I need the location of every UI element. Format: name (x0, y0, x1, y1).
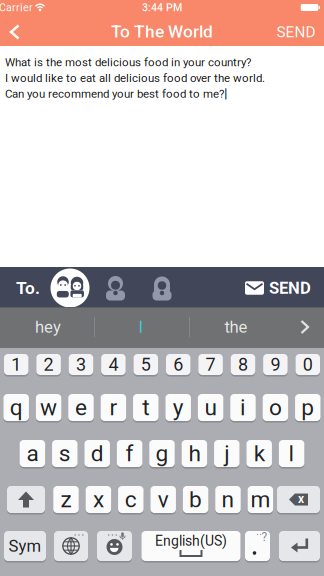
staticText: I would like to eat all delicious food o… (5, 71, 265, 85)
button[interactable]: x (86, 485, 111, 514)
staticText: v (158, 486, 169, 513)
button[interactable]: I (101, 312, 181, 342)
button[interactable]: English(US) (141, 530, 240, 562)
button[interactable] (288, 307, 322, 347)
staticText: SEND (276, 23, 315, 41)
button[interactable]: 0 (295, 353, 320, 376)
button[interactable]: the (196, 312, 276, 342)
staticText: a (26, 440, 38, 467)
staticText: 3 (76, 354, 86, 375)
button[interactable] (50, 268, 90, 308)
staticText: 2 (44, 354, 54, 375)
staticText: Carrier (0, 1, 33, 14)
button[interactable]: Sym (4, 530, 46, 562)
button[interactable]: a (20, 439, 45, 468)
button[interactable]: 7 (198, 353, 223, 376)
staticText: n (221, 486, 234, 513)
button[interactable]: 6 (166, 353, 190, 376)
button[interactable]: z (53, 485, 79, 514)
button[interactable]: k (246, 439, 272, 468)
staticText: f (126, 440, 134, 467)
staticText: z (60, 486, 71, 513)
button[interactable]: q (3, 393, 29, 422)
button[interactable]: hey (8, 312, 88, 342)
button[interactable] (7, 485, 45, 514)
button[interactable]: f (117, 439, 142, 468)
staticText: h (188, 440, 200, 467)
button[interactable]: u (198, 393, 223, 422)
staticText: y (173, 394, 184, 421)
staticText: l (289, 440, 295, 467)
button[interactable]: 3 (69, 353, 93, 376)
staticText: k (254, 440, 265, 467)
button[interactable]: n (215, 485, 241, 514)
staticText: m (250, 486, 270, 513)
staticText: x (93, 486, 104, 513)
staticText: ? (261, 530, 267, 544)
button[interactable]: w (36, 393, 61, 422)
staticText: i (240, 394, 246, 421)
staticText: 8 (238, 354, 248, 375)
staticText: To The World (111, 21, 213, 42)
staticText: q (10, 394, 23, 421)
button[interactable]: y (165, 393, 191, 422)
staticText: u (205, 394, 217, 421)
staticText: 6 (173, 354, 183, 375)
button[interactable]: 1 (4, 353, 28, 376)
staticText: Can you recommend your best food to me? (5, 87, 224, 101)
button[interactable]: 5 (133, 353, 158, 376)
staticText: Sym (8, 536, 41, 556)
button[interactable]: m (248, 485, 273, 514)
staticText: To. (16, 278, 40, 298)
staticText: SEND (269, 278, 311, 298)
button[interactable]: SEND (245, 268, 311, 308)
staticText: s (59, 440, 71, 467)
button[interactable]: b (183, 485, 208, 514)
button[interactable]: c (118, 485, 144, 514)
button[interactable]: i (230, 393, 256, 422)
button[interactable]: SEND (270, 17, 322, 47)
button[interactable]: x (277, 485, 320, 514)
staticText: I (138, 317, 143, 337)
button[interactable]: l (279, 439, 304, 468)
staticText: What is the most delicious food in your … (5, 55, 251, 69)
button[interactable]: 9 (263, 353, 288, 376)
button[interactable]: t (133, 393, 158, 422)
button[interactable] (279, 530, 320, 562)
button[interactable]: d (84, 439, 110, 468)
button[interactable]: e (68, 393, 94, 422)
staticText: 5 (141, 354, 151, 375)
staticText: hey (35, 317, 61, 337)
button[interactable]: 2 (36, 353, 61, 376)
staticText: English(US) (155, 533, 227, 549)
button[interactable]: j (214, 439, 239, 468)
button[interactable]: p (295, 393, 320, 422)
staticText: b (189, 486, 202, 513)
staticText: w (40, 394, 57, 421)
button[interactable]: g (149, 439, 175, 468)
staticText: j (224, 440, 229, 467)
button[interactable]: ? (245, 530, 270, 562)
button[interactable] (98, 268, 132, 308)
staticText: 0 (303, 354, 313, 375)
staticText: g (155, 440, 168, 467)
button[interactable] (1, 17, 29, 47)
button[interactable] (145, 268, 179, 308)
button[interactable]: h (182, 439, 207, 468)
button[interactable]: v (150, 485, 176, 514)
staticText: 1 (11, 354, 21, 375)
button[interactable]: s (52, 439, 77, 468)
staticText: d (91, 440, 104, 467)
staticText: p (301, 394, 314, 421)
button[interactable]: 8 (231, 353, 255, 376)
button[interactable]: r (101, 393, 126, 422)
button[interactable]: o (263, 393, 288, 422)
staticText: c (125, 486, 137, 513)
staticText: 3:44 PM (142, 1, 182, 14)
staticText: t (142, 394, 149, 421)
staticText: 7 (206, 354, 216, 375)
staticText: e (75, 394, 87, 421)
button[interactable]: 4 (101, 353, 126, 376)
button[interactable] (97, 530, 132, 562)
button[interactable] (54, 530, 88, 562)
